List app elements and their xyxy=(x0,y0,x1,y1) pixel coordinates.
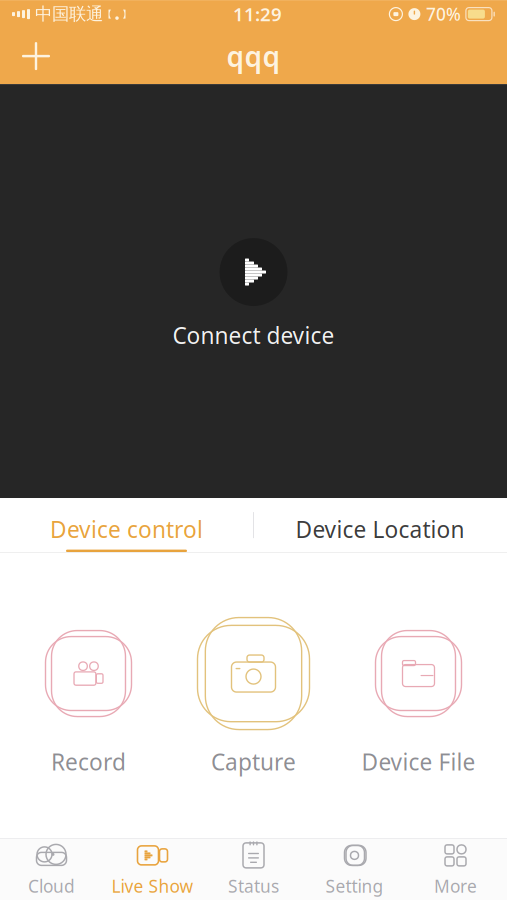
staticText: 中国联通 xyxy=(35,3,103,25)
staticText: Cloud xyxy=(28,874,75,897)
staticText: qqq xyxy=(226,37,280,75)
button[interactable]: Status xyxy=(203,840,304,898)
staticText: Capture xyxy=(211,746,296,777)
staticText: Device control xyxy=(50,514,203,544)
button[interactable]: Connect device xyxy=(213,232,293,312)
button[interactable]: Setting xyxy=(304,840,405,898)
staticText: Live Show xyxy=(111,874,193,897)
staticText: Status xyxy=(228,874,279,897)
button[interactable]: Cloud xyxy=(1,840,102,898)
button[interactable]: Record xyxy=(6,614,171,777)
staticText: More xyxy=(434,874,477,897)
staticText: Device Location xyxy=(295,514,464,544)
button[interactable]: Capture xyxy=(171,614,336,777)
staticText: Connect device xyxy=(172,320,334,350)
button[interactable]: More xyxy=(405,840,506,898)
staticText: Record xyxy=(51,746,126,777)
button[interactable]: Add device xyxy=(10,30,62,82)
button[interactable]: Device control xyxy=(0,498,253,552)
button[interactable]: Live Show xyxy=(102,840,203,898)
staticText: Setting xyxy=(325,874,383,897)
staticText: Device File xyxy=(361,746,475,777)
staticText: 11:29 xyxy=(233,2,282,26)
button[interactable]: Device Location xyxy=(253,498,507,552)
button[interactable]: Device File xyxy=(336,614,501,777)
staticText: 70% xyxy=(426,3,461,26)
